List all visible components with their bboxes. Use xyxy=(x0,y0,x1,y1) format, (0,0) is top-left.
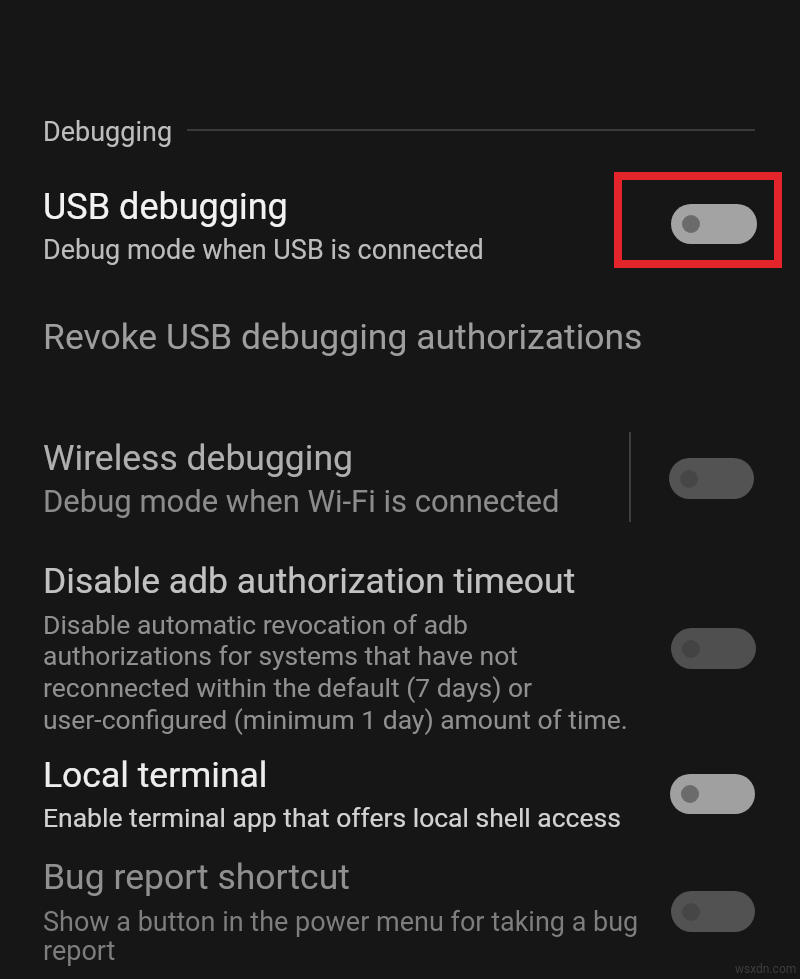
staticText: Wireless debugging xyxy=(43,437,353,479)
staticText: Local terminal xyxy=(43,754,268,796)
button[interactable] xyxy=(671,891,755,932)
button[interactable] xyxy=(0,558,800,738)
staticText: Debug mode when USB is connected xyxy=(43,234,484,266)
button[interactable] xyxy=(671,628,756,669)
staticText: USB debugging xyxy=(43,186,288,228)
button[interactable] xyxy=(0,850,800,979)
button[interactable] xyxy=(671,204,757,244)
button[interactable] xyxy=(0,172,800,274)
staticText: Debugging xyxy=(43,116,173,148)
button[interactable] xyxy=(0,305,800,380)
staticText: Disable automatic revocation of adb auth… xyxy=(43,609,628,736)
button[interactable] xyxy=(0,748,800,843)
staticText: Enable terminal app that offers local sh… xyxy=(43,802,621,833)
staticText: Disable adb authorization timeout xyxy=(43,560,576,602)
button[interactable] xyxy=(0,425,800,530)
staticText: Revoke USB debugging authorizations xyxy=(43,316,643,358)
staticText: wsxdn.com xyxy=(735,962,797,976)
staticText: Bug report shortcut xyxy=(43,856,350,898)
button[interactable] xyxy=(669,458,754,499)
staticText: Show a button in the power menu for taki… xyxy=(43,906,639,967)
button[interactable] xyxy=(670,774,755,814)
staticText: Debug mode when Wi-Fi is connected xyxy=(43,483,560,519)
